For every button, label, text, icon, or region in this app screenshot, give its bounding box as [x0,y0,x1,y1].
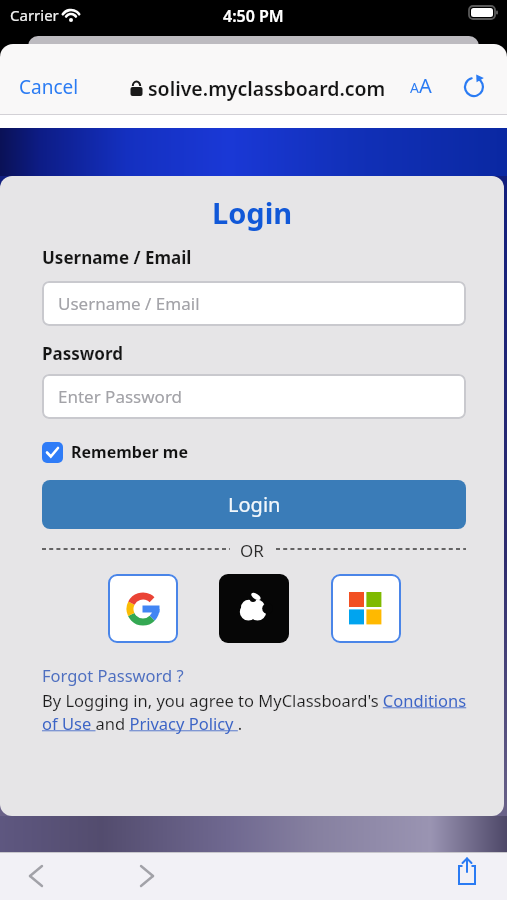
button[interactable]: By Logging in, you agree to MyClassboard… [42,689,467,711]
button[interactable]: Enter Password [42,374,466,419]
staticText: solive.myclassboard.com [148,75,386,102]
button[interactable]: Remember me [42,441,188,463]
button[interactable] [108,574,178,643]
button[interactable] [133,862,161,890]
staticText: 4:50 PM [223,5,284,27]
staticText: Username / Email [42,246,192,269]
staticText: Carrier [10,5,59,25]
button[interactable] [331,574,401,643]
staticText: OR [240,539,264,562]
button[interactable]: Forgot Password ? [42,664,184,686]
staticText: Password [42,342,123,365]
button[interactable] [219,574,289,643]
staticText: Remember me [71,441,188,463]
button[interactable] [463,74,489,100]
staticText: Login [228,491,281,518]
staticText: Login [212,193,293,232]
button[interactable]: of Use and Privacy Policy . [42,712,243,734]
staticText: Enter Password [58,385,183,408]
staticText: A [419,72,432,99]
button[interactable]: Username / Email [42,281,466,326]
staticText: Cancel [19,74,79,100]
button[interactable]: A [410,72,432,99]
button[interactable] [452,856,482,890]
button[interactable]: Login [42,480,466,529]
staticText: Username / Email [58,292,200,315]
button[interactable]: Cancel [14,72,84,102]
staticText: A [410,78,419,97]
button[interactable] [22,862,50,890]
